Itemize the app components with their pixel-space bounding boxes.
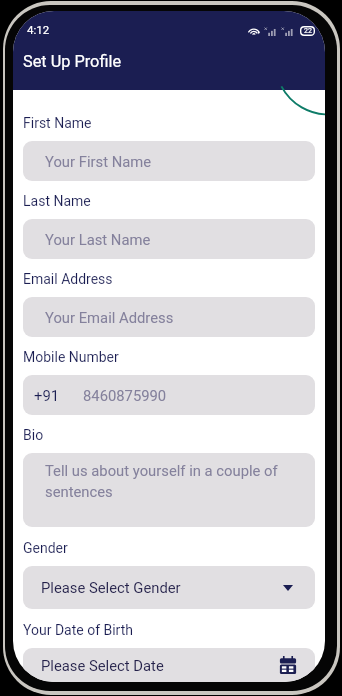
- staticText: +91: [34, 387, 60, 404]
- staticText: First Name: [23, 115, 92, 131]
- staticText: Tell us about yourself in a couple of se…: [45, 462, 293, 500]
- staticText: Mobile Number: [23, 349, 119, 365]
- other: Pick date: [279, 656, 297, 674]
- staticText: Gender: [23, 540, 68, 556]
- staticText: Last Name: [23, 193, 91, 209]
- button[interactable]: Your Email Address: [23, 297, 315, 337]
- button[interactable]: Please Select Gender: [23, 566, 315, 609]
- staticText: Email Address: [23, 271, 113, 287]
- staticText: Your First Name: [45, 153, 152, 170]
- staticText: Your Last Name: [45, 231, 151, 248]
- staticText: Bio: [23, 427, 44, 443]
- button[interactable]: +91: [23, 375, 315, 415]
- staticText: Please Select Date: [41, 657, 164, 674]
- button[interactable]: Please Select Date: [23, 648, 315, 682]
- staticText: 4:12: [27, 23, 50, 36]
- button[interactable]: Tell us about yourself in a couple of se…: [23, 453, 315, 527]
- staticText: Set Up Profile: [23, 52, 122, 71]
- staticText: Your Email Address: [45, 309, 174, 326]
- button[interactable]: Your First Name: [23, 141, 315, 181]
- button[interactable]: Your Last Name: [23, 219, 315, 259]
- staticText: 8460875990: [83, 387, 167, 404]
- other: Select gender: [283, 585, 293, 591]
- staticText: Please Select Gender: [41, 579, 181, 596]
- staticText: 22: [304, 27, 312, 35]
- staticText: Your Date of Birth: [23, 622, 133, 638]
